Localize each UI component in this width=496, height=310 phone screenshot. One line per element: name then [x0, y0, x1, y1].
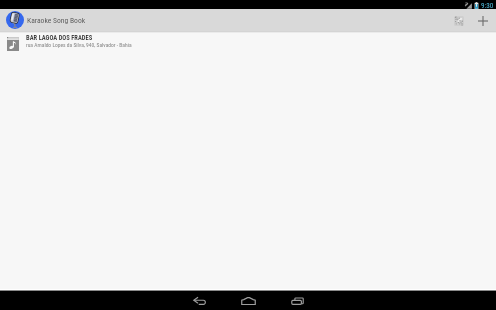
staticText: 9:30 [481, 1, 494, 9]
staticText: rua Arnaldo Lopes da Silva, 940, Salvado… [26, 42, 132, 48]
button[interactable]: Recent apps [281, 291, 313, 310]
button[interactable]: Add [471, 9, 495, 31]
staticText: BAR LAGOA DOS FRADES [26, 34, 93, 42]
staticText: Karaoke Song Book [27, 16, 86, 25]
button[interactable]: Home [232, 291, 264, 310]
button[interactable]: BAR LAGOA DOS FRADES [0, 33, 496, 51]
button[interactable]: Search [447, 9, 471, 31]
button[interactable]: Karaoke Song Book [6, 11, 24, 29]
button[interactable]: Back [183, 291, 215, 310]
